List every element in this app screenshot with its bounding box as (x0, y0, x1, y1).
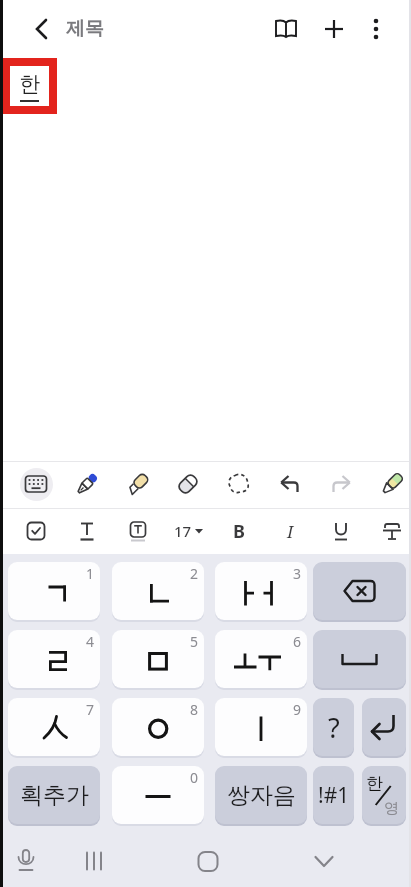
button[interactable] (272, 466, 308, 502)
button[interactable] (374, 513, 410, 549)
button[interactable]: B (221, 513, 257, 549)
staticText: 1 (86, 564, 95, 583)
button[interactable]: 3 (215, 562, 307, 620)
button[interactable]: 9 (215, 698, 307, 756)
staticText: 4 (86, 632, 95, 651)
staticText: 한 (366, 773, 383, 794)
staticText: ? (328, 709, 340, 746)
button[interactable] (190, 845, 226, 881)
button[interactable] (69, 513, 105, 549)
button[interactable] (316, 11, 352, 47)
button[interactable]: 6 (215, 630, 307, 688)
button[interactable]: 1 (8, 562, 100, 620)
button[interactable]: 4 (8, 630, 100, 688)
staticText: 0 (190, 768, 199, 787)
staticText: 쌍자음 (227, 781, 296, 810)
button[interactable] (306, 845, 342, 881)
staticText: 9 (293, 700, 302, 719)
staticText: 제목 (66, 17, 104, 41)
staticText: 2 (190, 564, 199, 583)
button[interactable] (18, 466, 54, 502)
staticText: 7 (86, 700, 95, 719)
button[interactable] (268, 11, 304, 47)
button[interactable] (374, 466, 410, 502)
button[interactable]: 쌍자음 (215, 766, 307, 824)
button[interactable]: !#1 (313, 766, 354, 824)
staticText: 획추가 (20, 781, 89, 810)
button[interactable]: 0 (112, 766, 204, 824)
button[interactable]: I (272, 513, 308, 549)
button[interactable] (120, 466, 156, 502)
button[interactable]: 7 (8, 698, 100, 756)
staticText: 5 (190, 632, 199, 651)
button[interactable] (8, 845, 44, 881)
button[interactable]: 17 (170, 513, 206, 549)
button[interactable] (170, 466, 206, 502)
button[interactable]: 2 (112, 562, 204, 620)
button[interactable] (76, 845, 112, 881)
staticText: 6 (293, 632, 302, 651)
staticText: 한 (19, 71, 40, 97)
button[interactable]: 한 (362, 766, 406, 824)
button[interactable] (323, 466, 359, 502)
staticText: B (233, 519, 245, 544)
button[interactable] (18, 513, 54, 549)
button[interactable] (120, 513, 156, 549)
button[interactable] (362, 698, 406, 756)
button[interactable] (69, 466, 105, 502)
button[interactable] (24, 11, 60, 47)
button[interactable]: ? (313, 698, 354, 756)
staticText: 8 (190, 700, 199, 719)
staticText: 17 (174, 521, 192, 541)
button[interactable]: 8 (112, 698, 204, 756)
button[interactable] (313, 562, 406, 620)
staticText: 영 (384, 799, 399, 818)
button[interactable]: 획추가 (8, 766, 100, 824)
button[interactable]: 5 (112, 630, 204, 688)
staticText: I (287, 520, 294, 543)
button[interactable] (221, 466, 257, 502)
button[interactable] (313, 630, 406, 688)
staticText: !#1 (318, 781, 350, 810)
button[interactable] (358, 11, 394, 47)
staticText: 3 (293, 564, 302, 583)
button[interactable] (323, 513, 359, 549)
